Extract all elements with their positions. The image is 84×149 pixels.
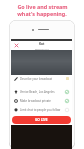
button[interactable]: Limit chat to people you follow (14, 105, 69, 114)
staticText: Make broadcast private (20, 99, 51, 103)
staticText: Limit chat to people you follow (20, 108, 61, 112)
staticText: GO LIVE (35, 118, 48, 122)
button[interactable]: Venice Beach, Los Angeles (14, 87, 69, 96)
button[interactable]: GO LIVE (12, 116, 71, 124)
staticText: Venice Beach, Los Angeles (20, 90, 55, 94)
staticText: Go live and stream (17, 3, 68, 10)
button[interactable]: Describe your broadcast (14, 75, 69, 87)
staticText: Describe your broadcast (20, 77, 52, 81)
button[interactable]: Make broadcast private (14, 96, 69, 105)
staticText: Kat (39, 42, 45, 46)
button[interactable]: Close (12, 41, 21, 50)
staticText: BROADCAST (35, 47, 49, 50)
staticText: what's happening. (17, 10, 67, 17)
